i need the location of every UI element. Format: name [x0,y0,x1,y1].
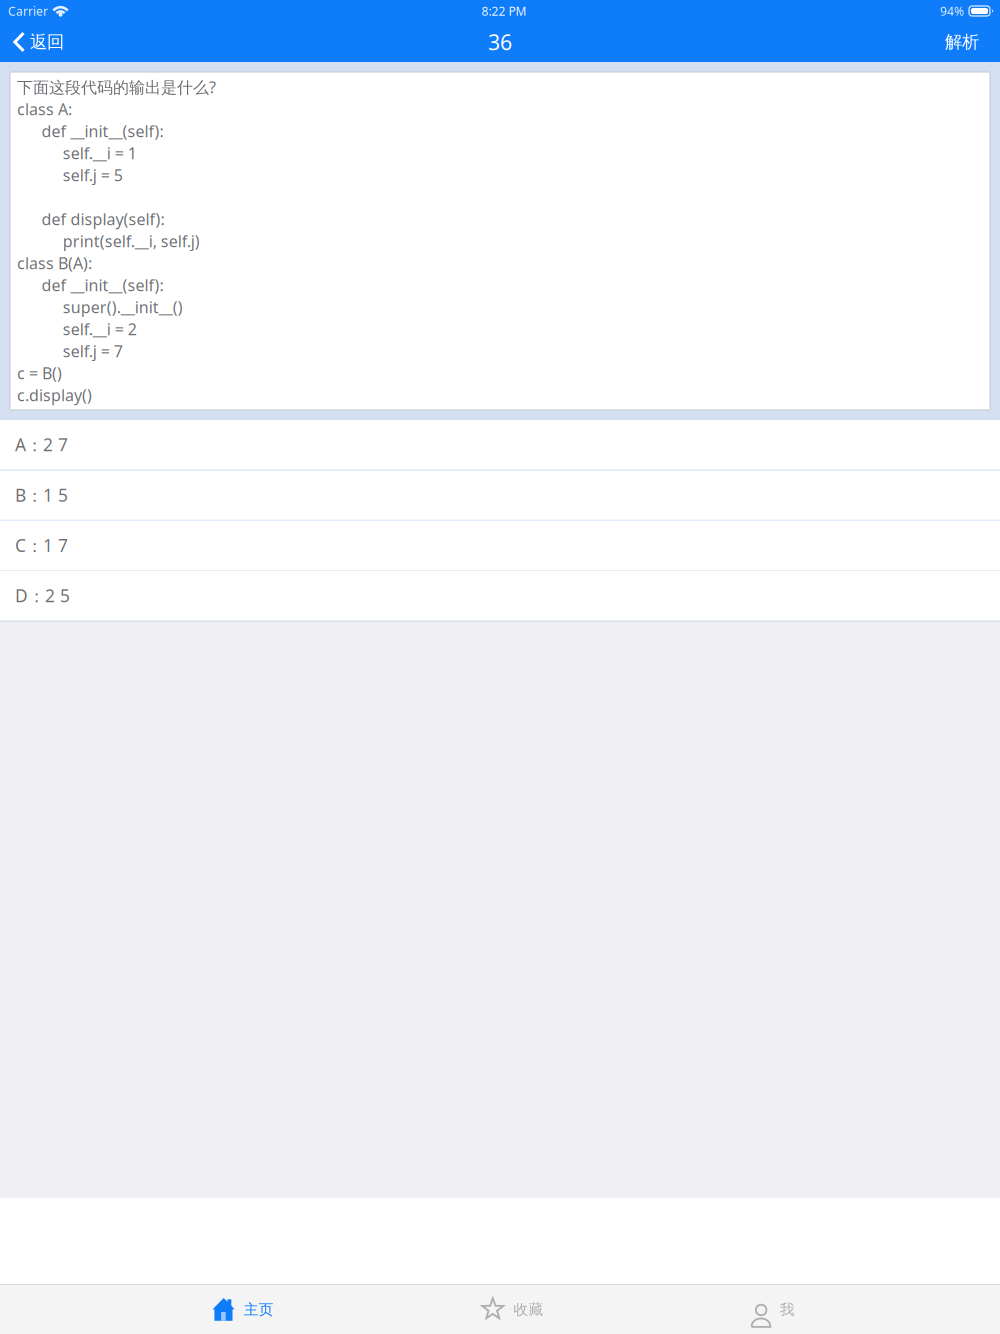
staticText: class A: [17,98,72,120]
staticText: C：1 7 [15,534,68,557]
button[interactable]: 我 [648,1285,898,1334]
button[interactable]: C：1 7 [0,521,1000,571]
staticText: 下面这段代码的输出是什么? [17,76,216,98]
staticText: 我 [780,1300,795,1318]
staticText: c = B() [17,362,62,384]
button[interactable]: 返回 [0,22,78,62]
staticText: c.display() [17,384,92,406]
button[interactable]: 解析 [931,22,1000,62]
staticText: class B(A): [17,252,92,274]
staticText: 解析 [945,31,979,53]
button[interactable]: 主页 [109,1285,377,1334]
staticText: 主页 [244,1300,274,1318]
button[interactable]: B：1 5 [0,470,1000,521]
staticText: 收藏 [513,1300,543,1318]
staticText: self.__i = 1 [63,142,137,164]
button[interactable]: D：2 5 [0,571,1000,621]
staticText: 返回 [30,31,64,53]
staticText: self.j = 7 [63,340,123,362]
staticText: D：2 5 [15,584,70,607]
staticText: def __init__(self): [42,274,164,296]
button[interactable]: A：2 7 [0,420,1000,470]
staticText: 36 [488,28,512,56]
staticText: 8:22 PM [481,3,526,19]
staticText: B：1 5 [15,483,68,506]
staticText: super().__init__() [63,296,183,318]
staticText: def __init__(self): [42,120,164,142]
staticText: self.__i = 2 [63,318,137,340]
button[interactable]: 收藏 [377,1285,648,1334]
staticText: Carrier [8,3,48,19]
staticText: A：2 7 [15,433,68,456]
staticText: self.j = 5 [63,164,123,186]
staticText: 94% [940,3,964,19]
staticText: print(self.__i, self.j) [63,230,200,252]
staticText: def display(self): [42,208,165,230]
